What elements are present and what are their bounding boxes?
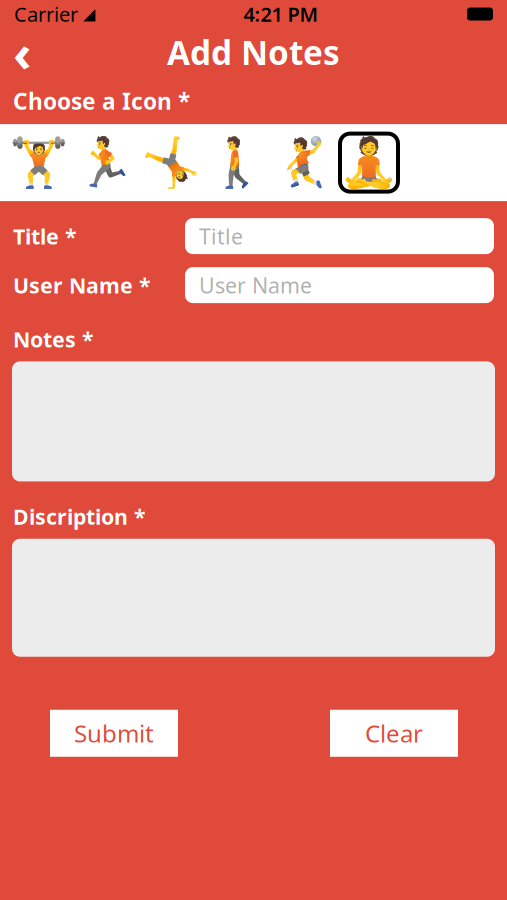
button[interactable]: User Name [185, 267, 494, 303]
staticText: 🏋 [9, 135, 69, 190]
staticText: Notes * [13, 325, 94, 353]
button[interactable]: Clear [330, 710, 458, 757]
staticText: Submit [74, 717, 154, 749]
button[interactable]: Workout icon [72, 134, 138, 192]
staticText: 🏃 [75, 135, 135, 190]
staticText: 4:21 PM [243, 1, 318, 27]
staticText: Discription * [13, 502, 146, 531]
button[interactable] [12, 361, 495, 481]
staticText: User Name [199, 271, 312, 299]
button[interactable]: Workout icon [138, 134, 204, 192]
button[interactable]: Submit [50, 710, 178, 757]
staticText: Title [199, 222, 243, 250]
staticText: 🤸 [141, 135, 201, 190]
staticText: ‹ [13, 18, 31, 86]
staticText: 🚶 [207, 135, 267, 190]
staticText: Carrier [14, 1, 78, 27]
staticText [78, 2, 83, 25]
button[interactable]: Workout icon [336, 134, 402, 192]
button[interactable]: Title [185, 218, 494, 254]
staticText: Add Notes [167, 30, 340, 74]
button[interactable]: Workout icon [270, 134, 336, 192]
staticText: Clear [365, 717, 423, 749]
button[interactable] [12, 539, 495, 657]
button[interactable]: Workout icon [204, 134, 270, 192]
button[interactable]: Workout icon [6, 134, 72, 192]
button[interactable]: Back [0, 30, 44, 74]
staticText: ◢ [83, 5, 95, 23]
staticText: Choose a Icon * [13, 86, 190, 116]
staticText: 🧘 [339, 135, 399, 190]
staticText: Title * [13, 222, 77, 250]
staticText: 🤾 [273, 135, 333, 190]
staticText: User Name * [13, 271, 151, 299]
